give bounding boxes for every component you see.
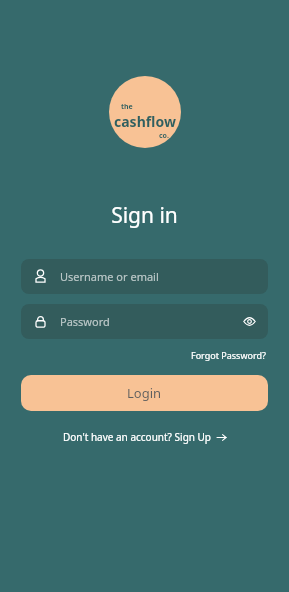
other: Show password	[243, 315, 256, 328]
other: Password	[33, 314, 48, 329]
staticText: Username or email	[60, 269, 256, 284]
staticText: cashflow	[114, 112, 176, 131]
button[interactable]: Don't have an account? Sign Up	[59, 428, 230, 446]
button[interactable]: Forgot Password?	[189, 347, 268, 363]
staticText: the	[121, 102, 133, 112]
staticText: Login	[127, 384, 162, 402]
button[interactable]: Username	[21, 259, 268, 294]
staticText: Sign in	[111, 201, 178, 230]
button[interactable]: Login	[21, 375, 268, 411]
staticText: Password	[60, 314, 243, 329]
staticText: Forgot Password?	[191, 349, 266, 361]
staticText: Don't have an account? Sign Up	[63, 430, 212, 444]
other: Username	[33, 269, 48, 284]
button[interactable]: Password	[21, 304, 268, 339]
staticText: co.	[159, 131, 169, 141]
